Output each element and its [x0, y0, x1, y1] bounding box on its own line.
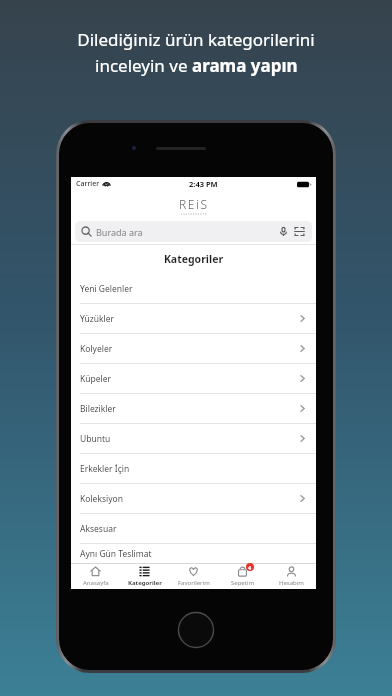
staticText: Erkekler İçin: [80, 463, 130, 475]
staticText: Ubuntu: [80, 433, 111, 445]
staticText: Kolyeler: [80, 343, 113, 355]
staticText: Küpeler: [80, 373, 112, 385]
button[interactable]: Anasayfa: [71, 564, 120, 589]
staticText: REiS: [179, 196, 209, 212]
staticText: Yüzükler: [80, 313, 115, 325]
button[interactable]: Aksesuar: [71, 514, 316, 543]
staticText: inceleyin ve: [95, 54, 192, 77]
staticText: Bilezikler: [80, 403, 116, 415]
staticText: 4: [248, 564, 252, 571]
button[interactable]: Kolyeler: [71, 334, 316, 363]
button[interactable]: Yeni Gelenler: [71, 274, 316, 303]
staticText: Aynı Gün Teslimat: [80, 548, 152, 560]
staticText: Favorilerim: [178, 579, 210, 587]
button[interactable]: Scan barcode: [293, 225, 306, 238]
staticText: Hesabım: [279, 579, 304, 587]
staticText: Dilediğiniz ürün kategorilerini: [77, 28, 315, 51]
button[interactable]: Koleksiyon: [71, 484, 316, 513]
staticText: 2:43 PM: [189, 179, 218, 189]
button[interactable]: Aynı Gün Teslimat: [71, 544, 316, 563]
button[interactable]: Bilezikler: [71, 394, 316, 423]
staticText: Aksesuar: [80, 523, 117, 535]
staticText: Carrier: [76, 179, 100, 189]
button[interactable]: Yüzükler: [71, 304, 316, 333]
button[interactable]: Favorilerim: [169, 564, 218, 589]
button[interactable]: Küpeler: [71, 364, 316, 393]
staticText: Kategoriler: [128, 579, 162, 587]
staticText: Koleksiyon: [80, 493, 123, 505]
button[interactable]: 4: [218, 564, 267, 589]
staticText: Kategoriler: [71, 252, 316, 266]
staticText: Sepetim: [231, 579, 255, 587]
button[interactable]: Hesabım: [267, 564, 316, 589]
button[interactable]: Ubuntu: [71, 424, 316, 453]
staticText: Burada ara: [96, 226, 143, 238]
button[interactable]: Erkekler İçin: [71, 454, 316, 483]
staticText: Anasayfa: [83, 579, 109, 587]
button[interactable]: Burada ara: [75, 221, 312, 242]
staticText: Yeni Gelenler: [80, 283, 133, 295]
button[interactable]: Voice search: [277, 225, 290, 238]
button[interactable]: Kategoriler: [120, 564, 169, 589]
staticText: arama yapın: [192, 54, 298, 77]
